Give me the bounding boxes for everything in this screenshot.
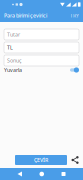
button[interactable]: Geri: [17, 171, 22, 176]
staticText: Para birimi çevirici: [4, 12, 47, 19]
button[interactable]: Paylaş: [71, 156, 79, 164]
staticText: TL: [7, 44, 13, 51]
button[interactable]: TRY: [70, 12, 83, 19]
button[interactable]: Sonuç: [4, 55, 79, 66]
button[interactable]: Yuvarla: [70, 67, 79, 73]
staticText: TRY: [70, 12, 79, 19]
staticText: Tutar: [7, 31, 20, 38]
staticText: Yuvarla: [4, 66, 22, 74]
button[interactable]: Son uygulamalar: [61, 172, 65, 176]
button[interactable]: Tutar: [4, 29, 79, 40]
button[interactable]: TL: [4, 42, 79, 53]
staticText: ÇEVİR: [34, 156, 48, 164]
button[interactable]: Ana ekran: [39, 172, 44, 176]
staticText: Sonuç: [7, 57, 22, 64]
button[interactable]: ÇEVİR: [15, 155, 67, 165]
